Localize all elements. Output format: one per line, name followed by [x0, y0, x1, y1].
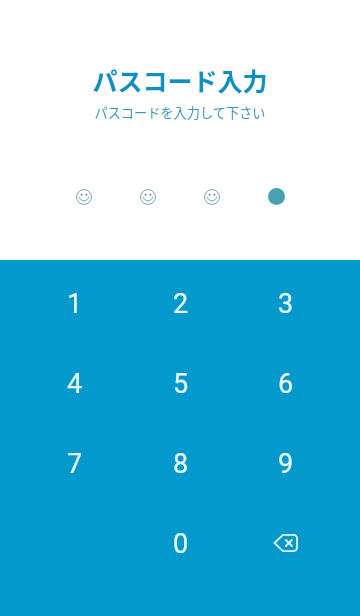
button[interactable]: 2 — [128, 262, 233, 342]
button[interactable]: 9 — [233, 422, 338, 502]
other: Delete — [274, 534, 298, 552]
button[interactable]: 7 — [22, 422, 128, 502]
button[interactable]: 1 — [22, 262, 128, 342]
button[interactable]: 6 — [233, 342, 338, 422]
staticText: パスコード入力 — [92, 62, 268, 98]
staticText: 2 — [173, 288, 189, 320]
button[interactable]: 8 — [128, 422, 233, 502]
button[interactable]: 5 — [128, 342, 233, 422]
button[interactable]: 0 — [128, 502, 233, 582]
staticText: 6 — [278, 368, 294, 400]
staticText: 0 — [173, 528, 189, 560]
staticText: 5 — [173, 368, 189, 400]
button[interactable]: 3 — [233, 262, 338, 342]
button[interactable]: 4 — [22, 342, 128, 422]
staticText: パスコードを入力して下さい — [94, 103, 266, 122]
staticText: 1 — [67, 288, 83, 320]
staticText: 9 — [278, 448, 294, 480]
staticText: 4 — [67, 368, 83, 400]
staticText: 7 — [67, 448, 83, 480]
staticText: 8 — [173, 448, 189, 480]
staticText: 3 — [278, 288, 294, 320]
button[interactable]: Delete — [233, 502, 338, 582]
